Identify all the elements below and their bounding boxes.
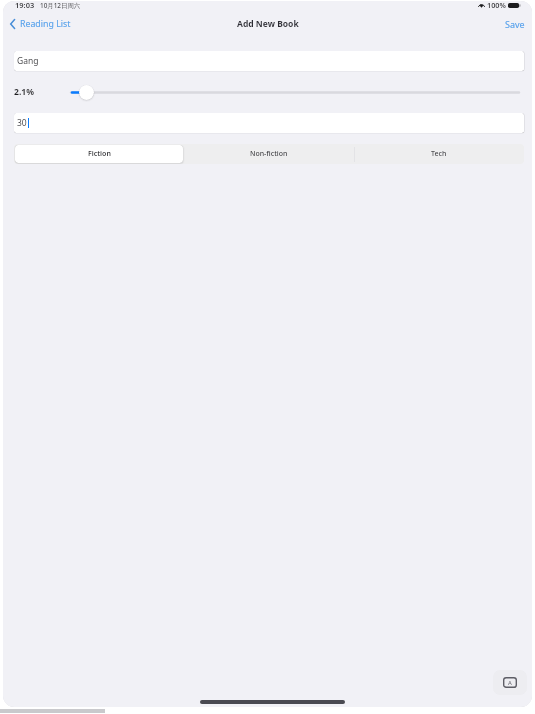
staticText: Reading List	[20, 18, 71, 30]
staticText: 19:03	[15, 1, 35, 10]
staticText: 30	[17, 117, 27, 129]
staticText: A	[508, 679, 512, 687]
button[interactable]: Non-fiction	[185, 145, 353, 163]
staticText: Add New Book	[237, 18, 299, 30]
staticText: 100%	[487, 1, 506, 10]
staticText: Non-fiction	[250, 149, 288, 159]
button[interactable]: Progress slider	[79, 85, 94, 100]
button[interactable]: Save	[505, 18, 525, 30]
staticText: Tech	[431, 149, 447, 159]
staticText: Save	[505, 18, 525, 30]
button[interactable]: Reading List	[10, 18, 71, 30]
button[interactable]: Tech	[355, 145, 523, 163]
staticText: 10月12日周六	[40, 1, 81, 10]
staticText: 2.1%	[14, 86, 34, 98]
button[interactable]: Hide keyboard	[493, 670, 527, 695]
staticText: Fiction	[88, 149, 111, 159]
button[interactable]: 30	[14, 113, 524, 133]
button[interactable]: Fiction	[15, 145, 183, 163]
button[interactable]: Gang	[14, 51, 524, 71]
staticText: Gang	[17, 55, 39, 67]
